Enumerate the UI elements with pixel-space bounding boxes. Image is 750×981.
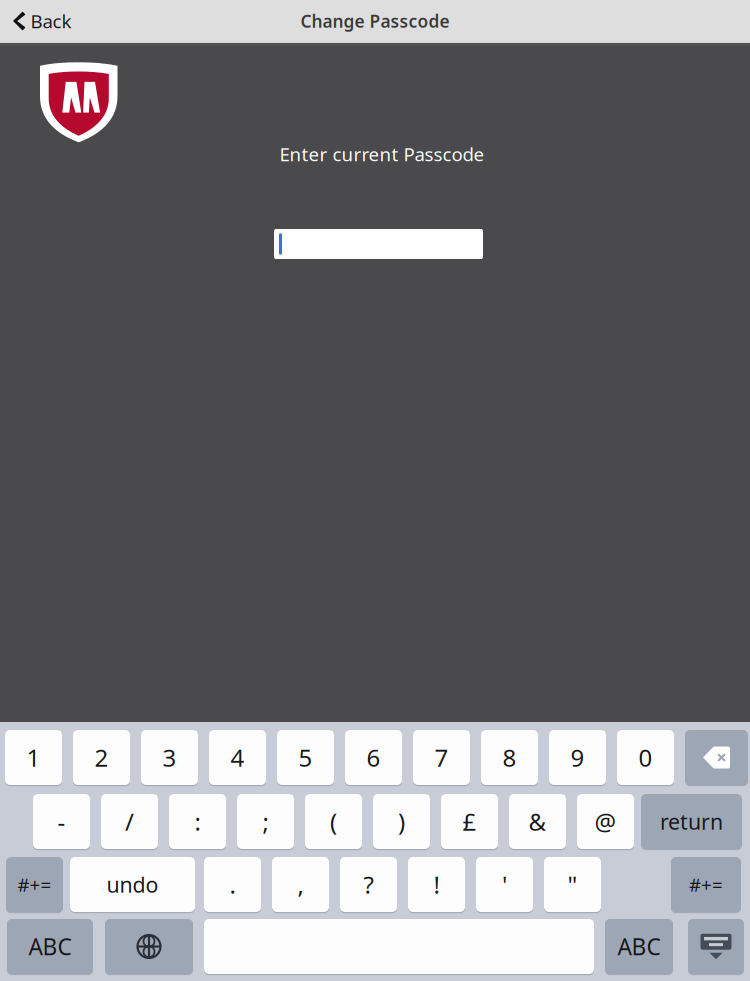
staticText: ?: [363, 869, 373, 900]
button[interactable]: -: [33, 793, 90, 850]
staticText: ": [567, 869, 577, 900]
staticText: 7: [434, 742, 448, 773]
button[interactable]: undo: [70, 856, 195, 913]
button[interactable]: 8: [481, 729, 538, 786]
staticText: ,: [297, 869, 303, 900]
button[interactable]: 5: [277, 729, 334, 786]
staticText: &: [528, 806, 546, 837]
staticText: (: [330, 806, 337, 837]
button[interactable]: ABC: [7, 918, 93, 975]
staticText: ABC: [617, 931, 660, 961]
staticText: 3: [162, 742, 176, 773]
staticText: 2: [94, 742, 108, 773]
button[interactable]: Delete: [685, 729, 748, 786]
staticText: -: [57, 806, 65, 837]
button[interactable]: ": [544, 856, 601, 913]
button[interactable]: 4: [209, 729, 266, 786]
button[interactable]: 0: [617, 729, 674, 786]
staticText: £: [462, 806, 476, 837]
button[interactable]: ,: [272, 856, 329, 913]
staticText: /: [125, 806, 134, 837]
button[interactable]: return: [641, 793, 742, 850]
button[interactable]: £: [441, 793, 498, 850]
button[interactable]: Next keyboard: [105, 918, 193, 975]
button[interactable]: 1: [5, 729, 62, 786]
button[interactable]: 9: [549, 729, 606, 786]
staticText: 5: [298, 742, 312, 773]
button[interactable]: ?: [340, 856, 397, 913]
button[interactable]: :: [169, 793, 226, 850]
staticText: 4: [230, 742, 244, 773]
staticText: .: [229, 869, 235, 900]
staticText: !: [433, 869, 439, 900]
button[interactable]: ': [476, 856, 533, 913]
staticText: 9: [570, 742, 584, 773]
staticText: 1: [26, 742, 40, 773]
staticText: 6: [366, 742, 380, 773]
button[interactable]: .: [204, 856, 261, 913]
button[interactable]: #+=: [6, 856, 63, 913]
button[interactable]: ): [373, 793, 430, 850]
staticText: @: [594, 806, 616, 837]
button[interactable]: 3: [141, 729, 198, 786]
button[interactable]: @: [577, 793, 634, 850]
button[interactable]: Passcode: [274, 229, 483, 259]
button[interactable]: &: [509, 793, 566, 850]
button[interactable]: 7: [413, 729, 470, 786]
button[interactable]: 2: [73, 729, 130, 786]
staticText: ABC: [28, 931, 71, 961]
staticText: undo: [106, 870, 158, 899]
button[interactable]: [204, 918, 594, 975]
button[interactable]: !: [408, 856, 465, 913]
staticText: :: [194, 806, 200, 837]
button[interactable]: ABC: [605, 918, 673, 975]
staticText: ;: [262, 806, 268, 837]
staticText: Change Passcode: [300, 9, 449, 32]
button[interactable]: (: [305, 793, 362, 850]
staticText: 8: [502, 742, 516, 773]
staticText: #+=: [17, 872, 51, 897]
staticText: 0: [638, 742, 652, 773]
staticText: return: [660, 807, 723, 836]
staticText: #+=: [689, 872, 723, 897]
button[interactable]: #+=: [671, 856, 741, 913]
staticText: Enter current Passcode: [279, 142, 484, 166]
button[interactable]: 6: [345, 729, 402, 786]
button[interactable]: /: [101, 793, 158, 850]
button[interactable]: Back: [0, 0, 110, 42]
button[interactable]: ;: [237, 793, 294, 850]
staticText: ): [398, 806, 405, 837]
button[interactable]: Dismiss keyboard: [688, 918, 744, 975]
staticText: ': [502, 869, 507, 900]
staticText: Back: [30, 9, 71, 33]
